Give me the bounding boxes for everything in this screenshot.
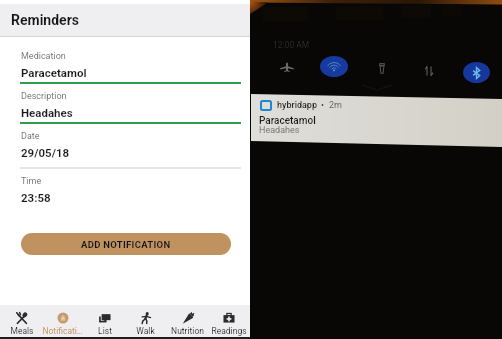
button[interactable]: Walk	[125, 305, 166, 337]
button[interactable]: Readings	[208, 305, 249, 337]
button[interactable]: ADD NOTIFICATION	[21, 233, 231, 255]
button[interactable]: Nutrition	[167, 305, 208, 337]
staticText: hybridapp	[277, 100, 317, 111]
staticText: Nutrition	[171, 326, 204, 336]
button[interactable]: Airplane mode	[280, 62, 294, 72]
button[interactable]: hybridapp	[250, 0, 502, 339]
staticText: 2m	[329, 100, 342, 111]
staticText: ADD NOTIFICATION	[81, 239, 171, 250]
staticText: List	[98, 326, 112, 336]
button[interactable]: Reminders	[0, 4, 250, 36]
staticText: Meals	[10, 326, 34, 336]
staticText: Paracetamol	[259, 115, 316, 127]
staticText: 12:00 AM	[273, 40, 310, 50]
staticText: Medication	[21, 51, 66, 62]
staticText: 23:58	[21, 191, 51, 204]
staticText: Reminders	[11, 12, 79, 28]
staticText: Readings	[211, 326, 247, 336]
staticText: Notificati…	[42, 326, 83, 336]
button[interactable]: Wi-Fi	[320, 56, 348, 77]
staticText: •	[321, 100, 325, 111]
staticText: Headahes	[259, 125, 300, 136]
staticText: Walk	[136, 326, 155, 336]
staticText: Paracetamol	[21, 66, 87, 79]
staticText: 29/05/18	[21, 146, 70, 159]
staticText: Time	[21, 176, 42, 187]
button[interactable]: Mobile data	[424, 66, 434, 76]
staticText: Description	[21, 91, 67, 102]
button[interactable]: Bluetooth	[463, 62, 490, 83]
staticText: Date	[21, 131, 40, 142]
staticText: Headahes	[21, 106, 73, 119]
button[interactable]: List	[84, 305, 125, 337]
button[interactable]: Flashlight	[378, 63, 386, 74]
button[interactable]: Notificati…	[42, 305, 83, 337]
button[interactable]: Meals	[1, 305, 42, 337]
